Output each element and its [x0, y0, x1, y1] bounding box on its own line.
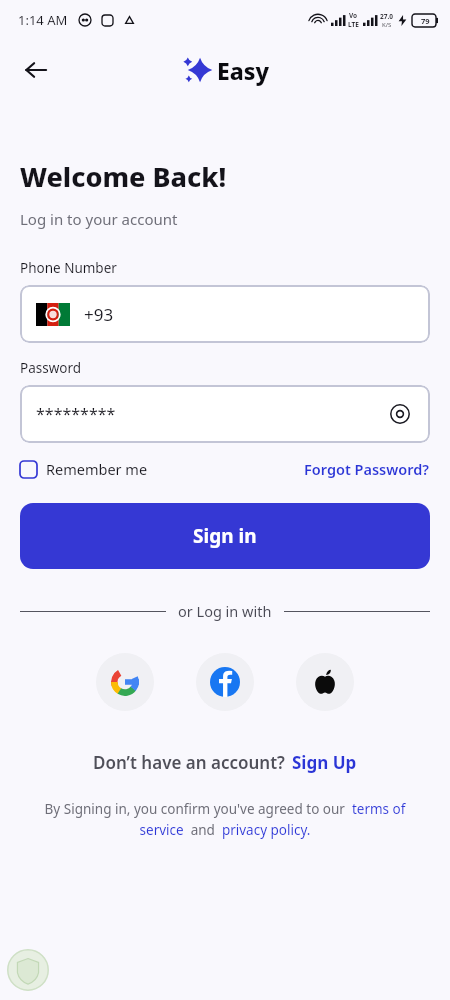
staticText: Easy — [217, 55, 270, 86]
button[interactable]: Sign Up — [292, 751, 357, 774]
staticText: 1:14 AM — [18, 11, 68, 29]
staticText: +93 — [84, 303, 114, 326]
staticText: Vo — [349, 11, 358, 20]
staticText: Sign in — [193, 523, 257, 549]
button[interactable]: +93 — [20, 285, 430, 343]
staticText: or Log in with — [178, 601, 272, 621]
staticText: Remember me — [46, 459, 148, 479]
button[interactable]: By Signing in, you confirm you've agreed… — [26, 800, 424, 839]
button[interactable]: ********* — [20, 385, 430, 443]
button[interactable]: Show password — [382, 396, 418, 432]
button[interactable]: Forgot Password? — [304, 459, 430, 479]
staticText: Phone Number — [20, 259, 117, 277]
button[interactable]: Back — [14, 48, 58, 92]
button[interactable]: Sign in with Google — [96, 653, 154, 711]
button[interactable]: Sign in with Facebook — [196, 653, 254, 711]
staticText: Sign Up — [292, 751, 357, 774]
button[interactable]: Sign in with Apple — [296, 653, 354, 711]
staticText: Don’t have an account? — [93, 751, 285, 774]
staticText: ********* — [36, 403, 116, 425]
staticText: Forgot Password? — [304, 459, 430, 479]
staticText: LTE — [348, 20, 359, 29]
staticText: Log in to your account — [20, 209, 178, 229]
staticText: Welcome Back! — [20, 158, 227, 195]
staticText: 79 — [421, 16, 430, 26]
button[interactable]: Remember me — [20, 459, 148, 479]
staticText: Password — [20, 359, 82, 377]
button[interactable]: Sign in — [20, 503, 430, 569]
staticText: 27.0 — [380, 12, 393, 21]
staticText: K/S — [382, 21, 392, 29]
staticText: By Signing in, you confirm you've agreed… — [26, 800, 424, 839]
